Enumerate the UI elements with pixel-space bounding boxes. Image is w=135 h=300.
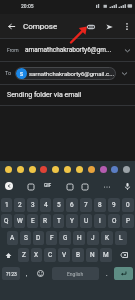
button[interactable]: 3 [27,198,38,212]
staticText: O [112,217,117,225]
staticText: F [50,234,54,242]
staticText: B [76,251,81,259]
staticText: 4 [44,201,48,209]
button[interactable]: J [87,231,99,245]
staticText: 1 [5,201,9,209]
staticText: sarnathchakraborty6@gmail.c... [29,70,114,77]
staticText: C [48,251,53,259]
button[interactable]: Q [1,214,12,228]
staticText: GIF [44,183,52,189]
staticText: A [10,234,15,242]
button[interactable]: Back [5,182,13,190]
button[interactable]: I [94,214,106,228]
button[interactable]: 5 [53,198,64,212]
button[interactable]: Emoji [111,166,118,173]
button[interactable]: Emoji [40,166,47,173]
button[interactable]: Voice input [123,182,132,191]
button[interactable]: R [40,214,51,228]
staticText: W [17,217,23,225]
button[interactable]: F [46,231,57,245]
button[interactable]: More options [119,19,134,34]
staticText: 0 [126,201,130,209]
button[interactable]: Emoji [52,166,59,173]
button[interactable]: Backspace [113,248,135,262]
button[interactable]: Emoji [76,166,83,173]
staticText: 7 [84,201,88,209]
staticText: P [126,217,131,225]
button[interactable]: Enter [114,267,133,280]
button[interactable]: Expand recipients [117,66,132,81]
button[interactable]: From [0,39,135,61]
button[interactable]: U [80,214,92,228]
button[interactable]: Back [0,15,22,37]
staticText: , [26,270,28,277]
staticText: Sending folder via email [7,91,82,99]
button[interactable]: O [108,214,120,228]
button[interactable]: Y [66,214,78,228]
button[interactable]: Attach file [81,17,100,36]
button[interactable]: 2 [14,198,25,212]
button[interactable]: S [15,67,116,80]
button[interactable]: Emoji [64,166,71,173]
button[interactable]: 9 [108,198,120,212]
staticText: G [63,234,68,242]
button[interactable]: Expand from [119,42,135,58]
staticText: X [34,251,39,259]
button[interactable]: Comma [21,267,33,280]
button[interactable]: Clipboard [80,182,89,191]
staticText: U [84,217,89,225]
button[interactable]: GIF [44,183,52,189]
button[interactable]: A [7,231,18,245]
button[interactable]: To [0,62,135,84]
button[interactable]: Emoji [123,166,130,173]
staticText: 5 [57,201,61,209]
button[interactable]: 1 [1,198,12,212]
button[interactable]: M [100,248,112,262]
staticText: S [24,234,28,242]
button[interactable]: ?123 [2,267,20,280]
button[interactable]: Period [100,267,113,280]
staticText: L [119,234,123,242]
button[interactable]: Sending folder via email [0,85,135,105]
button[interactable]: K [101,231,113,245]
button[interactable]: 4 [40,198,51,212]
staticText: 8 [98,201,102,209]
button[interactable]: C [44,248,56,262]
button[interactable]: Emoji [100,166,107,173]
button[interactable]: Z [18,248,29,262]
button[interactable]: Emoji [29,166,36,173]
button[interactable]: V [58,248,70,262]
button[interactable]: G [59,231,71,245]
button[interactable]: 7 [80,198,92,212]
button[interactable]: Emoji [5,166,12,173]
button[interactable]: Shift [0,248,17,262]
button[interactable]: More [102,182,111,191]
button[interactable]: 0 [122,198,134,212]
button[interactable]: English [52,267,99,280]
button[interactable]: W [14,214,25,228]
button[interactable]: Emoji [17,166,24,173]
button[interactable]: 8 [94,198,106,212]
button[interactable]: E [27,214,38,228]
button[interactable]: X [31,248,42,262]
staticText: Compose [23,22,58,31]
button[interactable]: Stickers [26,182,35,191]
button[interactable]: Emoji [88,166,95,173]
button[interactable]: P [122,214,134,228]
button[interactable]: D [33,231,44,245]
staticText: N [90,251,95,259]
button[interactable]: 6 [66,198,78,212]
staticText: Q [4,217,9,225]
staticText: D [36,234,41,242]
button[interactable]: T [53,214,64,228]
button[interactable]: Emoji [34,267,47,280]
button[interactable]: Settings [65,182,74,191]
button[interactable]: N [86,248,98,262]
staticText: J [91,234,95,242]
button[interactable]: S [20,231,31,245]
button[interactable]: Send [100,17,119,36]
button[interactable]: H [73,231,85,245]
button[interactable]: L [115,231,127,245]
button[interactable]: B [72,248,84,262]
staticText: T [57,217,61,225]
